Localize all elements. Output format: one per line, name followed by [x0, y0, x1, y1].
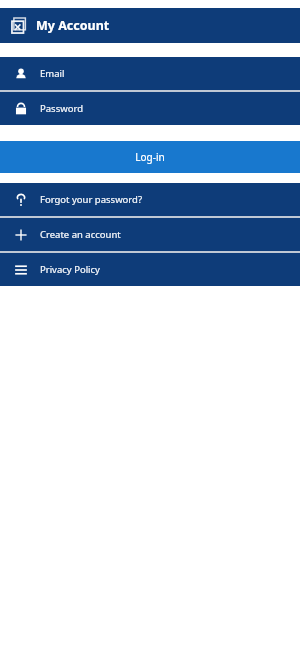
button[interactable]: Create an account	[0, 218, 300, 251]
staticText: Privacy Policy	[40, 263, 100, 276]
staticText: Log-in	[135, 150, 165, 164]
button[interactable]: Forgot your password?	[0, 183, 300, 216]
button[interactable]: Password	[0, 92, 300, 125]
staticText: Create an account	[40, 228, 121, 241]
button[interactable]: Privacy Policy	[0, 253, 300, 286]
staticText: Password	[40, 102, 83, 115]
button[interactable]: Log-in	[0, 141, 300, 173]
button[interactable]: Email	[0, 57, 300, 90]
staticText: Email	[40, 67, 65, 80]
staticText: Forgot your password?	[40, 193, 143, 206]
button[interactable]: App logo	[11, 18, 27, 34]
staticText: My Account	[36, 17, 110, 34]
